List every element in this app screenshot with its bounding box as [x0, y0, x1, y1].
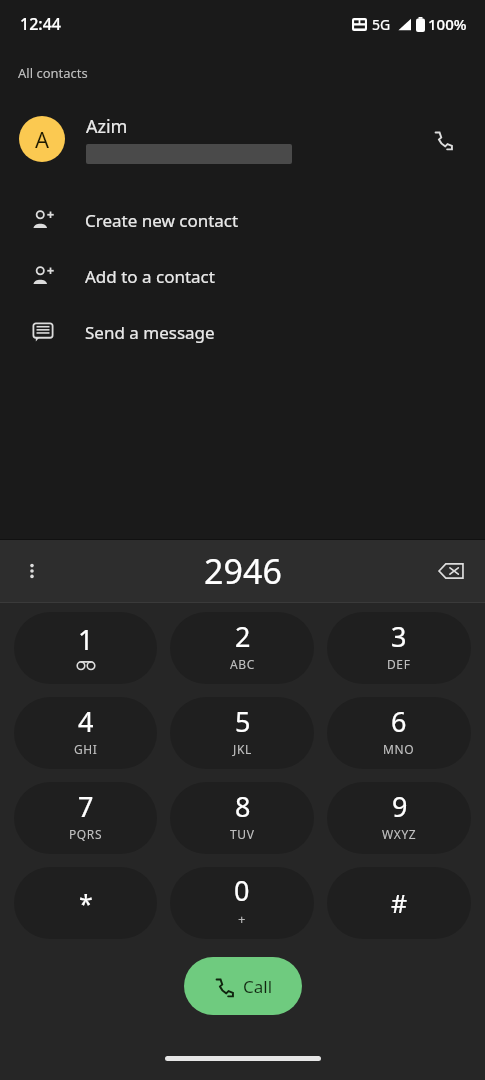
button[interactable]: 6	[327, 697, 471, 769]
staticText: Add to a contact	[85, 265, 215, 288]
staticText: 1	[78, 621, 94, 658]
staticText: TUV	[230, 826, 255, 842]
staticText: 8	[235, 788, 251, 825]
staticText: Send a message	[85, 321, 215, 344]
button[interactable]: Backspace	[427, 547, 475, 595]
staticText: 5G	[372, 15, 391, 34]
staticText: 2946	[204, 548, 282, 594]
staticText: A	[35, 124, 50, 154]
staticText: 3	[391, 618, 407, 655]
staticText: 100%	[428, 14, 467, 34]
staticText: *	[79, 886, 93, 920]
button[interactable]: 9	[327, 782, 471, 854]
staticText: 7	[78, 788, 94, 825]
button[interactable]: Add to a contact	[0, 248, 485, 304]
button[interactable]: 8	[170, 782, 314, 854]
staticText: Create new contact	[85, 209, 239, 232]
button[interactable]: Call	[184, 957, 302, 1015]
button[interactable]: 5	[170, 697, 314, 769]
staticText: 0	[234, 872, 250, 909]
staticText: +	[238, 910, 247, 928]
staticText: PQRS	[69, 826, 103, 842]
staticText: GHI	[74, 741, 98, 757]
button[interactable]: 4	[14, 697, 157, 769]
staticText: 12:44	[20, 13, 61, 35]
button[interactable]: Create new contact	[0, 192, 485, 248]
button[interactable]: 2	[170, 612, 314, 684]
staticText: Azim	[86, 114, 128, 139]
staticText: All contacts	[18, 64, 88, 82]
staticText: 5	[235, 703, 251, 740]
button[interactable]: *	[14, 867, 157, 939]
button[interactable]: 0	[170, 867, 314, 939]
staticText: 6	[391, 703, 407, 740]
staticText: Call	[243, 975, 273, 998]
staticText: DEF	[387, 656, 411, 672]
staticText: 4	[78, 703, 94, 740]
button[interactable]: 7	[14, 782, 157, 854]
staticText: 2	[235, 618, 251, 655]
staticText: WXYZ	[382, 826, 417, 842]
button[interactable]: Send a message	[0, 304, 485, 360]
staticText: JKL	[233, 741, 252, 757]
button[interactable]: A	[0, 104, 485, 174]
staticText: ABC	[230, 656, 255, 672]
button[interactable]: Call Azim	[418, 115, 466, 163]
button[interactable]: 1	[14, 612, 157, 684]
button[interactable]: #	[327, 867, 471, 939]
button[interactable]: More options	[8, 547, 56, 595]
staticText: 9	[392, 788, 408, 825]
staticText: MNO	[383, 741, 415, 757]
staticText: #	[391, 886, 408, 920]
button[interactable]: 3	[327, 612, 471, 684]
